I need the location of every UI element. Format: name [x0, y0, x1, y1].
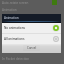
staticText: Animation: [4, 16, 19, 20]
staticText: Animation: [2, 8, 17, 12]
button[interactable]: All animations: [2, 34, 61, 44]
staticText: All animations: [4, 37, 52, 41]
button[interactable]: Animation: [0, 7, 64, 13]
button[interactable]: In Pocket detection: [0, 55, 64, 62]
staticText: No animations: [4, 26, 52, 30]
button[interactable]: Cancel: [23, 45, 40, 51]
button[interactable]: Auto-rotate screen: [0, 0, 64, 6]
staticText: Cancel: [27, 46, 37, 50]
staticText: In Pocket detection: [2, 57, 30, 61]
button[interactable]: No animations: [2, 23, 61, 33]
staticText: Auto-rotate screen: [2, 1, 52, 5]
